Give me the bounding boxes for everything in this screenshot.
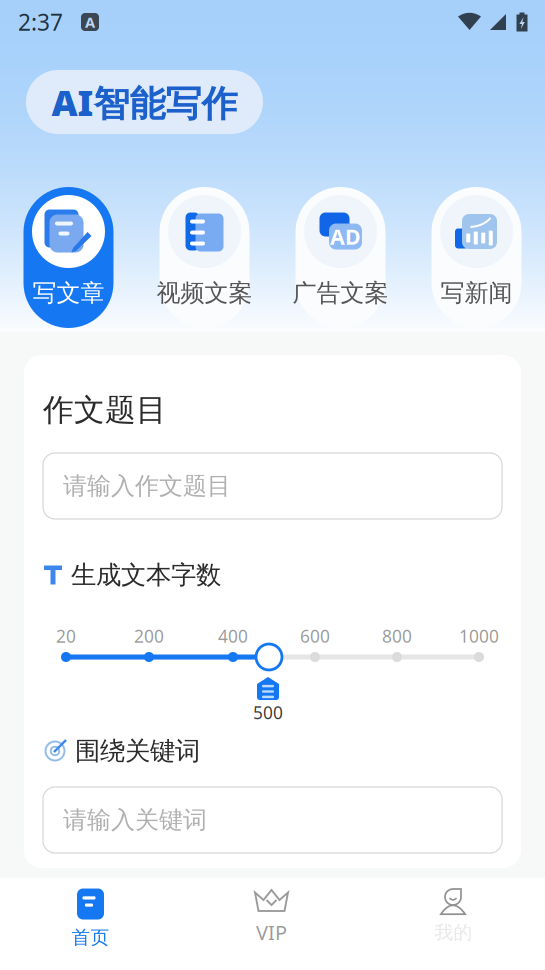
staticText: 800 [382,624,412,647]
staticText: AI智能写作 [51,78,237,126]
staticText: 2:37 [18,7,63,37]
staticText: 写新闻 [440,278,512,308]
staticText: 视频文案 [156,278,252,308]
button[interactable]: 写新闻 [408,187,544,328]
staticText: 写文章 [32,278,104,308]
button[interactable]: AD [272,187,408,328]
staticText: 围绕关键词 [75,735,200,766]
staticText: A [85,12,95,32]
button[interactable]: 我的 [362,878,545,970]
button[interactable]: 请输入关键词 [43,787,502,853]
button[interactable]: 首页 [0,878,181,970]
staticText: 600 [300,624,330,647]
button[interactable]: 视频文案 [136,187,272,328]
button[interactable]: VIP [181,878,362,970]
button[interactable]: 写文章 [0,187,136,328]
staticText: 请输入关键词 [63,805,207,835]
staticText: 生成文本字数 [71,559,221,590]
staticText: 作文题目 [43,391,167,429]
button[interactable]: 请输入作文题目 [43,453,502,519]
staticText: 广告文案 [292,278,388,308]
staticText: 请输入作文题目 [63,471,231,501]
staticText: VIP [256,919,287,946]
button[interactable]: AI智能写作 [26,70,263,134]
staticText: 200 [134,624,164,647]
staticText: AD [330,222,361,251]
staticText: 400 [218,624,248,647]
staticText: 20 [56,624,76,647]
staticText: 1000 [459,624,499,647]
staticText: 首页 [71,926,109,949]
staticText: 500 [253,701,283,724]
staticText: 我的 [434,921,472,944]
